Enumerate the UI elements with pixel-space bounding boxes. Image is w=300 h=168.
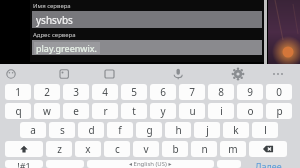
button[interactable]: o [237,103,263,119]
button[interactable]: s [49,122,75,138]
button[interactable]: v [133,141,159,157]
staticText: 9 [247,85,253,99]
staticText: b [172,142,179,156]
staticText: z [57,142,62,156]
staticText: w [43,104,51,118]
button[interactable]: Stickers [30,64,90,84]
button[interactable]: x [75,141,101,157]
staticText: p [276,104,283,118]
staticText: g [146,123,153,137]
staticText: c [115,142,120,156]
button[interactable]: 8 [208,84,234,100]
button[interactable]: 3 [63,84,89,100]
button[interactable]: h [165,122,191,138]
button[interactable]: play.greenwix.ru [32,40,262,55]
button[interactable]: k [223,122,249,138]
staticText: v [143,142,149,156]
button[interactable]: Voice input [140,64,202,84]
button[interactable]: !#1 [5,160,43,168]
button[interactable]: e [63,103,89,119]
button[interactable]: w [34,103,60,119]
button[interactable]: 1 [5,84,31,100]
button[interactable]: f [107,122,133,138]
staticText: Далее [255,160,282,168]
button[interactable]: g [136,122,162,138]
button[interactable]: m [220,141,246,157]
button[interactable] [249,141,287,157]
staticText: j [206,123,209,137]
staticText: y [160,104,166,118]
button[interactable]: b [162,141,188,157]
button[interactable]: 0 [266,84,292,100]
button[interactable]: 5 [121,84,147,100]
staticText: a [30,123,36,137]
staticText: k [233,123,239,137]
staticText: 0 [276,85,282,99]
staticText: 3 [73,85,79,99]
staticText: 5 [131,85,137,99]
staticText: r [103,104,108,118]
staticText: Имя сервера [33,2,71,10]
button[interactable]: yshsvbs [32,11,262,28]
button[interactable]: More [252,64,300,84]
staticText: 6 [160,85,166,99]
button[interactable]: d [78,122,104,138]
button[interactable]: 4 [92,84,118,100]
button[interactable]: ◂ English (US) ▸ [87,160,214,168]
staticText: e [73,104,79,118]
staticText: h [175,123,182,137]
staticText: i [220,104,223,118]
staticText: o [247,104,254,118]
staticText: q [15,104,22,118]
button[interactable]: Settings [202,64,252,84]
staticText: s [60,123,65,137]
staticText: 7 [189,85,195,99]
button[interactable]: u [179,103,205,119]
staticText: 2 [44,85,50,99]
button[interactable]: . [217,160,241,168]
staticText: Адрес сервера [33,31,76,39]
staticText: l [264,123,267,137]
button[interactable]: p [266,103,292,119]
staticText: ◂ English (US) ▸ [129,160,172,168]
button[interactable]: c [104,141,130,157]
staticText: 4 [102,85,108,99]
staticText: !#1 [17,160,31,168]
staticText: f [118,123,122,137]
button[interactable]: q [5,103,31,119]
button[interactable]: 7 [179,84,205,100]
staticText: 1 [15,85,21,99]
button[interactable]: a [20,122,46,138]
button[interactable]: r [92,103,118,119]
button[interactable]: j [194,122,220,138]
button[interactable]: 9 [237,84,263,100]
staticText: n [201,142,208,156]
button[interactable]: t [121,103,147,119]
button[interactable] [5,141,43,157]
button[interactable]: n [191,141,217,157]
button[interactable]: Далее [244,160,292,168]
staticText: t [132,104,136,118]
button[interactable]: i [208,103,234,119]
staticText: 8 [218,85,224,99]
staticText: d [88,123,95,137]
button[interactable]: , [46,160,84,168]
button[interactable]: Emoji [0,64,30,84]
button[interactable]: z [46,141,72,157]
staticText: yshsvbs [36,13,73,27]
staticText: u [189,104,196,118]
button[interactable]: GIF [90,64,140,84]
button[interactable]: 2 [34,84,60,100]
button[interactable]: l [252,122,278,138]
button[interactable]: 6 [150,84,176,100]
staticText: x [85,142,91,156]
staticText: m [228,142,238,156]
staticText: play.greenwix.ru [36,42,100,54]
button[interactable]: y [150,103,176,119]
